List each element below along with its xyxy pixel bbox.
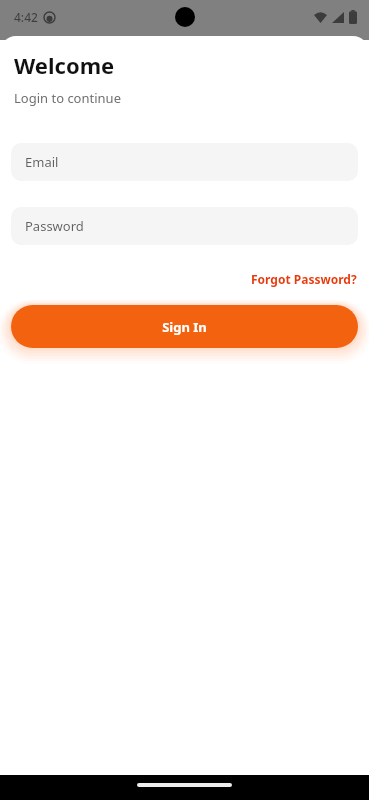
staticText: Password <box>25 217 84 235</box>
button[interactable]: Email <box>11 143 358 181</box>
staticText: Email <box>25 153 59 171</box>
staticText: 4:42 <box>14 9 38 25</box>
button[interactable]: Password <box>11 207 358 245</box>
staticText: Forgot Password? <box>251 271 357 287</box>
staticText: Login to continue <box>14 89 121 107</box>
button[interactable]: Forgot Password? <box>239 267 369 291</box>
button[interactable]: Sign In <box>11 305 358 348</box>
staticText: Welcome <box>14 50 115 80</box>
staticText: Sign In <box>162 318 207 336</box>
